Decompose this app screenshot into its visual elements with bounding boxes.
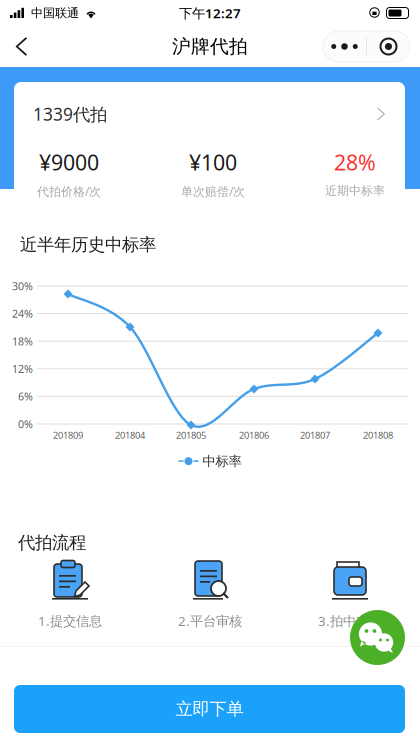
staticText: 201808	[363, 429, 393, 441]
staticText: 代拍价格/次	[37, 183, 101, 199]
staticText: 3.拍中交易	[318, 612, 382, 630]
staticText: 201806	[239, 429, 269, 441]
staticText: 18%	[12, 334, 33, 348]
button[interactable]: 立即下单	[14, 685, 405, 733]
staticText: 中国联通	[31, 6, 79, 20]
staticText: 6%	[18, 389, 33, 404]
staticText: 1.提交信息	[38, 612, 102, 630]
button[interactable]: 更多	[323, 31, 410, 62]
staticText: 近期中标率	[325, 183, 385, 198]
staticText: 代拍流程	[18, 532, 86, 553]
staticText: 12%	[12, 362, 33, 376]
staticText: 沪牌代拍	[172, 35, 248, 58]
staticText: 中标率	[202, 453, 241, 469]
staticText: 201805	[176, 429, 206, 441]
staticText: 近半年历史中标率	[20, 234, 156, 255]
button[interactable]: 返回	[0, 26, 44, 67]
staticText: 2.平台审核	[178, 612, 242, 630]
staticText: 201807	[300, 429, 330, 441]
staticText: 下午12:27	[179, 4, 241, 22]
staticText: 立即下单	[175, 698, 243, 720]
staticText: 30%	[12, 279, 33, 293]
staticText: 201804	[115, 429, 145, 441]
button[interactable]: 微信	[350, 610, 405, 665]
staticText: ¥100	[189, 148, 237, 176]
staticText: 28%	[334, 148, 376, 176]
staticText: 单次赔偿/次	[181, 183, 245, 199]
button[interactable]: 1339代拍	[14, 82, 405, 219]
staticText: 24%	[12, 307, 33, 321]
staticText: 1339代拍	[33, 102, 107, 125]
staticText: ¥9000	[39, 148, 99, 176]
staticText: 201809	[53, 429, 83, 441]
staticText: 0%	[18, 417, 33, 431]
